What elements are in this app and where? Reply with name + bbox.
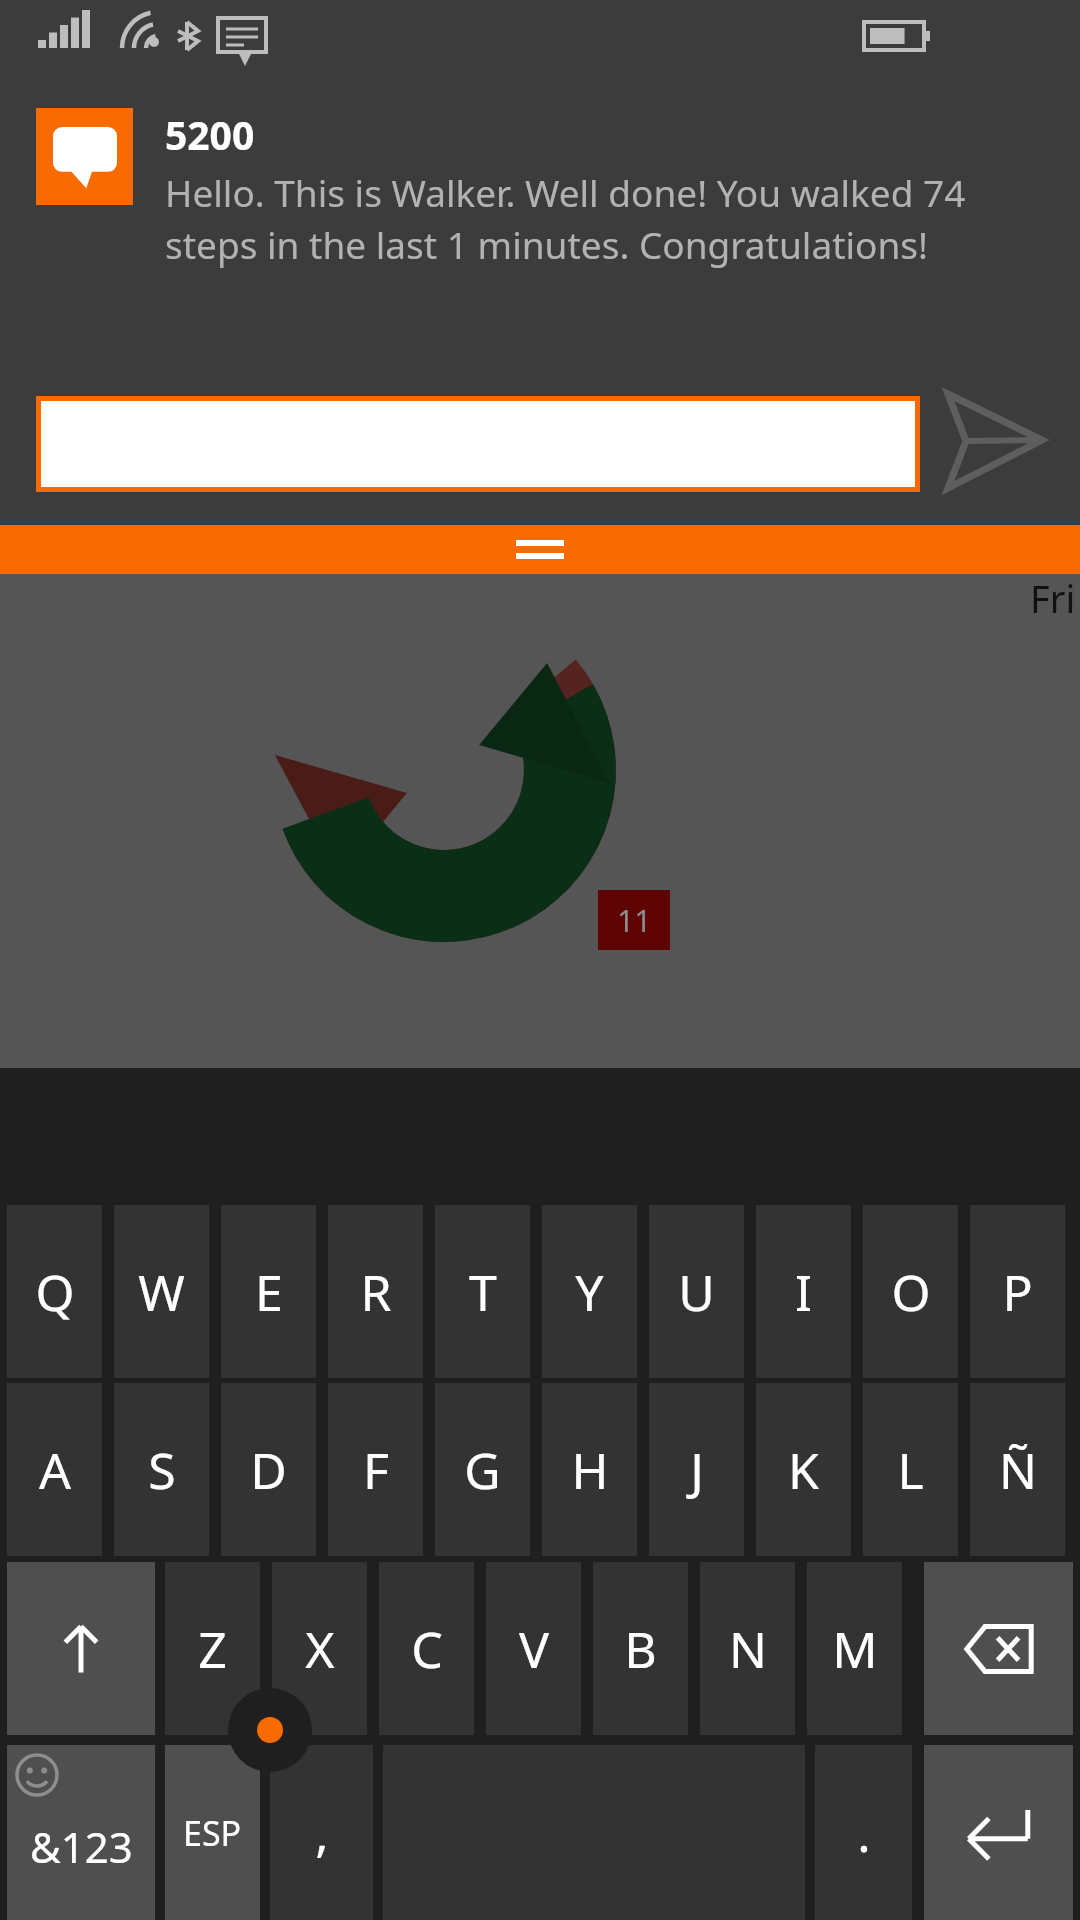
staticText: O: [891, 1258, 931, 1326]
button[interactable]: L: [863, 1383, 958, 1556]
staticText: Fri: [1030, 572, 1076, 624]
staticText: ,: [315, 1799, 329, 1867]
button[interactable]: U: [649, 1205, 744, 1378]
staticText: G: [464, 1436, 501, 1504]
button[interactable]: D: [221, 1383, 316, 1556]
button[interactable]: ,: [270, 1745, 373, 1920]
button[interactable]: N: [700, 1562, 795, 1735]
staticText: S: [148, 1436, 176, 1504]
staticText: 5200: [165, 108, 255, 161]
button[interactable]: T: [435, 1205, 530, 1378]
button[interactable]: B: [593, 1562, 688, 1735]
staticText: U: [678, 1258, 715, 1326]
staticText: V: [519, 1615, 549, 1683]
staticText: N: [729, 1615, 767, 1683]
staticText: F: [363, 1436, 389, 1504]
staticText: .: [857, 1799, 871, 1867]
button[interactable]: F: [328, 1383, 423, 1556]
button[interactable]: O: [863, 1205, 958, 1378]
staticText: W: [138, 1258, 185, 1326]
button[interactable]: Backspace: [924, 1562, 1073, 1735]
button[interactable]: Z: [165, 1562, 260, 1735]
staticText: K: [788, 1436, 819, 1504]
button[interactable]: Shift: [7, 1562, 155, 1735]
staticText: J: [690, 1436, 704, 1504]
button[interactable]: W: [114, 1205, 209, 1378]
button[interactable]: &123: [7, 1745, 155, 1920]
staticText: C: [411, 1615, 443, 1683]
staticText: Ñ: [999, 1436, 1037, 1504]
button[interactable]: E: [221, 1205, 316, 1378]
staticText: Y: [575, 1258, 604, 1326]
button[interactable]: Y: [542, 1205, 637, 1378]
staticText: Z: [198, 1615, 227, 1683]
button[interactable]: .: [815, 1745, 912, 1920]
staticText: E: [255, 1258, 283, 1326]
button[interactable]: 5200: [0, 108, 1080, 270]
staticText: L: [897, 1436, 924, 1504]
staticText: I: [795, 1258, 812, 1326]
button[interactable]: I: [756, 1205, 851, 1378]
staticText: B: [624, 1615, 657, 1683]
button[interactable]: A: [7, 1383, 102, 1556]
button[interactable]: K: [756, 1383, 851, 1556]
staticText: D: [250, 1436, 287, 1504]
button[interactable]: S: [114, 1383, 209, 1556]
button[interactable]: X: [272, 1562, 367, 1735]
button[interactable]: M: [807, 1562, 902, 1735]
button[interactable]: Enter: [924, 1745, 1073, 1920]
staticText: Q: [35, 1258, 75, 1326]
staticText: X: [305, 1615, 335, 1683]
button[interactable]: ESP: [165, 1745, 260, 1920]
staticText: H: [571, 1436, 609, 1504]
staticText: Hello. This is Walker. Well done! You wa…: [165, 167, 1056, 270]
button[interactable]: Expand notification: [0, 525, 1080, 574]
button[interactable]: Ñ: [970, 1383, 1065, 1556]
button[interactable]: [36, 396, 920, 492]
staticText: P: [1002, 1258, 1033, 1326]
button[interactable]: G: [435, 1383, 530, 1556]
staticText: M: [832, 1615, 878, 1683]
staticText: R: [360, 1258, 392, 1326]
staticText: ESP: [183, 1810, 242, 1856]
button[interactable]: C: [379, 1562, 474, 1735]
staticText: A: [39, 1436, 71, 1504]
button[interactable]: Voice input: [228, 1688, 312, 1772]
button[interactable]: R: [328, 1205, 423, 1378]
button[interactable]: P: [970, 1205, 1065, 1378]
staticText: T: [469, 1258, 497, 1326]
staticText: 11: [617, 900, 652, 941]
button[interactable]: H: [542, 1383, 637, 1556]
button[interactable]: J: [649, 1383, 744, 1556]
button[interactable]: Send: [936, 384, 1052, 500]
staticText: &123: [30, 1818, 133, 1875]
button[interactable]: V: [486, 1562, 581, 1735]
button[interactable]: Q: [7, 1205, 102, 1378]
